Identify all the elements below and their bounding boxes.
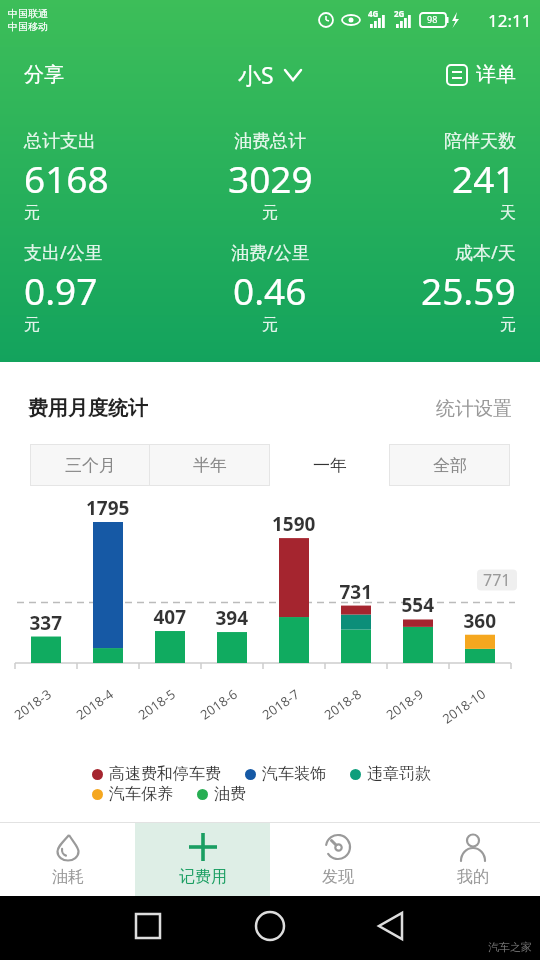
staticText: 一年 (313, 455, 347, 476)
button[interactable]: 一年 (270, 444, 389, 486)
staticText: 油费总计 (234, 130, 306, 153)
button[interactable]: 半年 (150, 445, 269, 485)
staticText: 小S (238, 59, 274, 90)
button[interactable]: 全部 (390, 445, 509, 485)
staticText: 半年 (193, 455, 227, 476)
button[interactable] (0, 896, 180, 960)
staticText: 三个月 (65, 455, 116, 476)
staticText: 25.59 (421, 265, 516, 315)
button[interactable]: 发现 (270, 823, 405, 896)
staticText: 元 (262, 203, 278, 223)
staticText: 汽车之家 (488, 940, 532, 954)
staticText: 费用月度统计 (28, 396, 148, 421)
button[interactable]: 统计设置 (436, 397, 512, 421)
button[interactable]: 我的 (405, 823, 540, 896)
staticText: 油耗 (52, 867, 84, 887)
staticText: 元 (24, 315, 40, 335)
staticText: 汽车保养 (109, 784, 173, 804)
button[interactable]: 分享 (24, 62, 64, 87)
staticText: 6168 (24, 153, 109, 203)
staticText: 3029 (228, 153, 313, 203)
staticText: 中国联通 (8, 7, 48, 20)
staticText: 高速费和停车费 (109, 764, 221, 784)
staticText: 12:11 (488, 9, 532, 32)
button[interactable]: 详单 (446, 62, 516, 87)
button[interactable] (180, 896, 360, 960)
button[interactable] (360, 896, 540, 960)
staticText: 元 (500, 315, 516, 335)
button[interactable]: 小S (238, 59, 302, 90)
staticText: 我的 (457, 867, 489, 887)
staticText: 发现 (322, 867, 354, 887)
staticText: 违章罚款 (367, 764, 431, 784)
staticText: 油费/公里 (231, 240, 310, 265)
staticText: 0.46 (233, 265, 307, 315)
button[interactable]: 油耗 (0, 823, 135, 896)
staticText: 支出/公里 (24, 240, 103, 265)
staticText: 陪伴天数 (444, 130, 516, 153)
staticText: 元 (262, 315, 278, 335)
button[interactable]: 记费用 (135, 823, 270, 896)
staticText: 241 (452, 153, 516, 203)
staticText: 全部 (433, 455, 467, 476)
staticText: 总计支出 (24, 130, 96, 153)
staticText: 油费 (214, 784, 246, 804)
staticText: 记费用 (179, 867, 227, 887)
staticText: 元 (24, 203, 40, 223)
staticText: 汽车装饰 (262, 764, 326, 784)
button[interactable]: 三个月 (31, 445, 149, 485)
staticText: 详单 (476, 62, 516, 87)
staticText: 中国移动 (8, 20, 48, 33)
staticText: 成本/天 (455, 240, 516, 265)
staticText: 天 (500, 203, 516, 223)
staticText: 0.97 (24, 265, 98, 315)
